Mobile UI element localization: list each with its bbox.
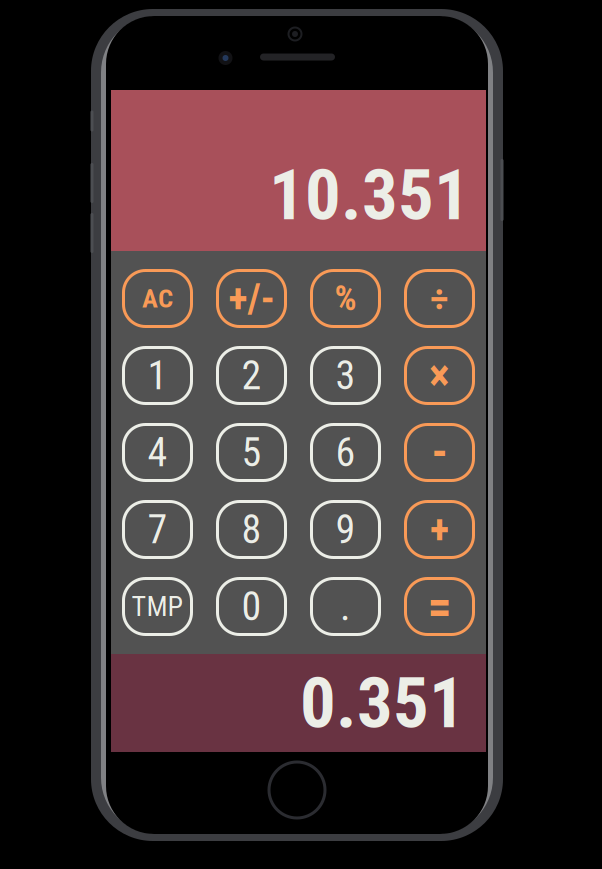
button[interactable]: = — [405, 578, 473, 634]
button[interactable]: 1 — [123, 347, 191, 403]
button[interactable]: 5 — [217, 424, 285, 480]
button[interactable]: 2 — [217, 347, 285, 403]
staticText: % — [334, 278, 356, 319]
staticText: 10.351 — [269, 154, 470, 236]
staticText: 7 — [147, 506, 167, 553]
button[interactable]: + — [405, 501, 473, 557]
button[interactable]: TMP — [123, 578, 191, 634]
button[interactable]: 8 — [217, 501, 285, 557]
staticText: × — [429, 350, 450, 401]
button[interactable]: 0 — [217, 578, 285, 634]
button[interactable]: ÷ — [405, 270, 473, 326]
button[interactable]: +/- — [217, 270, 285, 326]
staticText: 0 — [241, 583, 261, 630]
staticText: ÷ — [430, 277, 449, 320]
staticText: 9 — [335, 506, 355, 553]
staticText: 5 — [241, 429, 261, 476]
button[interactable]: AC — [123, 270, 191, 326]
button[interactable]: - — [405, 424, 473, 480]
staticText: 6 — [335, 429, 355, 476]
staticText: 4 — [147, 429, 167, 476]
staticText: - — [431, 426, 447, 479]
staticText: 0.351 — [300, 662, 465, 744]
staticText: 8 — [241, 506, 261, 553]
staticText: . — [340, 583, 351, 630]
staticText: TMP — [131, 590, 183, 623]
button[interactable]: . — [311, 578, 379, 634]
staticText: = — [427, 578, 451, 635]
button[interactable]: × — [405, 347, 473, 403]
button[interactable]: 7 — [123, 501, 191, 557]
button[interactable]: 3 — [311, 347, 379, 403]
staticText: 3 — [335, 352, 355, 399]
staticText: 2 — [241, 352, 261, 399]
button[interactable]: 9 — [311, 501, 379, 557]
staticText: 1 — [147, 352, 167, 399]
button[interactable]: 6 — [311, 424, 379, 480]
staticText: +/- — [228, 275, 274, 322]
staticText: + — [430, 506, 449, 553]
button[interactable]: 4 — [123, 424, 191, 480]
button[interactable]: % — [311, 270, 379, 326]
staticText: AC — [142, 283, 173, 314]
